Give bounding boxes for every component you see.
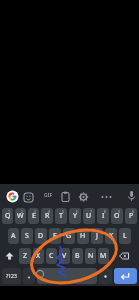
staticText: K <box>109 231 114 241</box>
button[interactable]: P <box>125 208 137 224</box>
staticText: ?123 <box>6 273 17 280</box>
button[interactable]: C <box>46 248 57 264</box>
button[interactable] <box>37 268 97 284</box>
button[interactable]: J <box>91 228 103 244</box>
button[interactable] <box>99 191 114 202</box>
staticText: H <box>80 231 86 241</box>
staticText: L <box>123 231 127 241</box>
button[interactable]: T <box>55 208 67 224</box>
button[interactable]: R <box>41 208 53 224</box>
staticText: E <box>32 211 36 221</box>
button[interactable]: S <box>21 228 33 244</box>
staticText: 9 <box>118 209 121 214</box>
button[interactable] <box>126 189 137 203</box>
staticText: N <box>88 251 94 261</box>
staticText: C <box>49 251 54 261</box>
staticText: M <box>100 251 107 261</box>
button[interactable]: N <box>85 248 96 264</box>
button[interactable]: V <box>59 248 70 264</box>
staticText: 1 <box>8 209 11 214</box>
staticText: 8 <box>104 209 107 214</box>
button[interactable]: A <box>8 228 19 244</box>
button[interactable]: G <box>63 228 75 244</box>
button[interactable]: F <box>49 228 61 244</box>
staticText: O <box>114 211 120 221</box>
staticText: GIF <box>44 192 53 199</box>
button[interactable]: H <box>77 228 89 244</box>
button[interactable]: E <box>28 208 39 224</box>
button[interactable]: K <box>105 228 117 244</box>
staticText: U <box>86 211 92 221</box>
button[interactable]: Z <box>19 248 31 264</box>
button[interactable] <box>5 189 20 204</box>
button[interactable]: Q <box>2 208 13 224</box>
staticText: D <box>38 231 44 241</box>
staticText: Z <box>23 251 28 261</box>
button[interactable] <box>99 268 112 284</box>
button[interactable]: D <box>35 228 47 244</box>
staticText: 2 <box>21 209 24 214</box>
button[interactable]: W <box>15 208 26 224</box>
button[interactable] <box>23 192 34 203</box>
staticText: J <box>96 231 98 241</box>
staticText: 3 <box>34 209 37 214</box>
staticText: 5 <box>62 209 65 214</box>
staticText: W <box>17 211 24 221</box>
staticText: V <box>62 251 67 261</box>
button[interactable]: U <box>83 208 95 224</box>
button[interactable]: B <box>72 248 83 264</box>
button[interactable] <box>78 191 89 202</box>
staticText: S <box>25 231 29 241</box>
button[interactable] <box>2 248 17 264</box>
button[interactable]: X <box>33 248 44 264</box>
staticText: R <box>45 211 50 221</box>
staticText: 4 <box>48 209 51 214</box>
button[interactable] <box>60 191 71 202</box>
staticText: 6 <box>76 209 79 214</box>
staticText: 0 <box>132 209 135 214</box>
button[interactable] <box>23 268 35 284</box>
staticText: T <box>59 211 63 221</box>
staticText: G <box>66 231 72 241</box>
button[interactable]: O <box>111 208 123 224</box>
staticText: F <box>53 231 57 241</box>
staticText: B <box>75 251 80 261</box>
button[interactable]: ?123 <box>2 268 21 284</box>
staticText: Y <box>73 211 77 221</box>
button[interactable]: L <box>119 228 131 244</box>
staticText: 7 <box>90 209 93 214</box>
button[interactable]: M <box>98 248 109 264</box>
button[interactable]: I <box>97 208 109 224</box>
button[interactable]: Y <box>69 208 81 224</box>
button[interactable] <box>114 268 137 284</box>
staticText: Q <box>5 211 11 221</box>
button[interactable] <box>111 248 137 264</box>
staticText: X <box>36 251 41 261</box>
staticText: I <box>102 211 105 221</box>
button[interactable]: GIF <box>40 190 56 201</box>
staticText: A <box>11 231 16 241</box>
staticText: P <box>129 211 134 221</box>
